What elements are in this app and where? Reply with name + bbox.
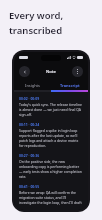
staticText: Transcript	[60, 83, 80, 88]
staticText: Insights	[25, 83, 40, 88]
staticText: Support flagged a spike in login loop re…	[19, 128, 83, 148]
button[interactable]: Insights	[14, 80, 51, 90]
staticText: 00:41 · 00:55	[19, 184, 40, 189]
button[interactable]: 00:27 · 00:36	[19, 153, 83, 179]
button[interactable]: 00:41 · 00:55	[19, 184, 83, 206]
staticText: Every word,	[9, 9, 64, 22]
button[interactable]: 00:02 · 00:09	[19, 96, 83, 117]
staticText: 00:11 · 00:24	[19, 122, 40, 127]
staticText: Today's quick sync. The release timeline…	[19, 102, 83, 117]
staticText: On the positive side, the new onboarding…	[19, 159, 83, 179]
button[interactable]: Back	[19, 66, 30, 77]
staticText: 00:02 · 00:09	[19, 96, 40, 101]
staticText: Note	[46, 69, 56, 75]
button[interactable]: More options	[72, 66, 83, 77]
staticText: 00:27 · 00:36	[19, 153, 40, 158]
staticText: Before we wrap: QA will confirm the migr…	[19, 190, 83, 206]
button[interactable]: 00:11 · 00:24	[19, 122, 83, 148]
button[interactable]: Transcript	[51, 80, 88, 90]
staticText: transcribed	[9, 24, 63, 37]
